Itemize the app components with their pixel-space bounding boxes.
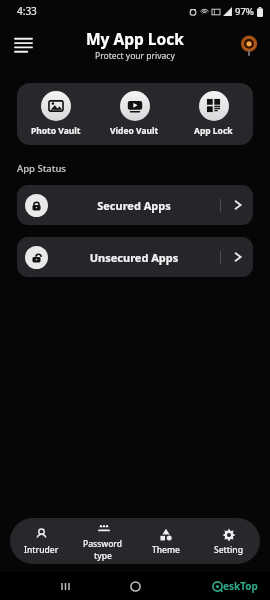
button[interactable]: Menu: [8, 30, 38, 60]
button[interactable]: Unsecured Apps: [17, 237, 253, 277]
staticText: 4:33: [17, 4, 37, 18]
staticText: App Status: [17, 162, 66, 175]
button[interactable]: Setting: [197, 524, 260, 559]
button[interactable]: App Lock: [174, 86, 253, 142]
button[interactable]: Recents: [52, 573, 78, 599]
staticText: Theme: [152, 544, 180, 556]
staticText: Intruder: [24, 544, 59, 556]
button[interactable]: Home: [121, 572, 149, 600]
staticText: App Lock: [194, 125, 233, 137]
staticText: Password: [83, 538, 123, 550]
button[interactable]: Photo Vault: [17, 86, 95, 142]
staticText: My App Lock: [86, 28, 184, 49]
button[interactable]: Secured Apps: [17, 185, 253, 225]
button[interactable]: Intruder: [10, 524, 72, 559]
button[interactable]: Video Vault: [95, 86, 174, 142]
staticText: Unsecured Apps: [48, 250, 220, 265]
staticText: Setting: [214, 544, 243, 556]
staticText: 97%: [235, 5, 254, 18]
button[interactable]: Theme: [134, 524, 197, 559]
staticText: Video Vault: [110, 125, 159, 137]
staticText: Secured Apps: [48, 198, 220, 213]
staticText: Protect your privacy: [95, 50, 175, 62]
button[interactable]: Password: [72, 518, 134, 564]
button[interactable]: App info: [236, 32, 262, 58]
staticText: Photo Vault: [31, 125, 81, 137]
staticText: eskTop: [223, 579, 258, 593]
staticText: type: [94, 550, 112, 561]
